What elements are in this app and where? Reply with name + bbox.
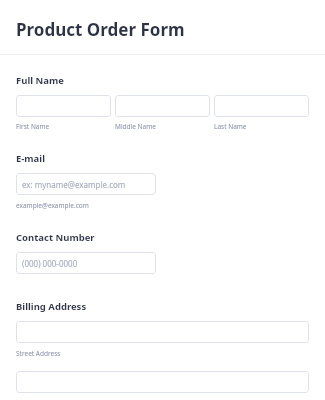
staticText: Billing Address (16, 300, 87, 313)
staticText: (000) 000-0000 (22, 258, 78, 269)
staticText: Last Name (214, 122, 247, 131)
staticText: Middle Name (115, 122, 156, 131)
button[interactable]: ex: myname@example.com (16, 173, 156, 195)
staticText: Contact Number (16, 231, 95, 244)
staticText: Street Address (16, 349, 61, 358)
staticText: E-mail (16, 152, 45, 165)
button[interactable]: (000) 000-0000 (16, 252, 156, 274)
button[interactable] (16, 321, 309, 343)
button[interactable] (16, 371, 309, 393)
button[interactable] (214, 95, 309, 117)
staticText: ex: myname@example.com (22, 179, 126, 190)
staticText: First Name (16, 122, 50, 131)
button[interactable] (16, 95, 111, 117)
button[interactable] (115, 95, 210, 117)
staticText: Product Order Form (16, 18, 185, 41)
staticText: Full Name (16, 74, 64, 87)
staticText: example@example.com (16, 201, 89, 210)
